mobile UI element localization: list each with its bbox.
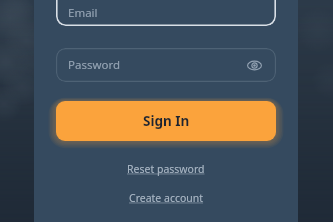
staticText: Create account [129,191,204,205]
button[interactable]: Password [56,48,276,82]
button[interactable]: Sign In [56,101,276,141]
staticText: Sign In [143,112,190,130]
button[interactable]: Reset password [121,159,211,179]
staticText: Password [68,57,244,73]
button[interactable]: Email [56,0,276,26]
staticText: Reset password [127,162,205,176]
staticText: Email [68,5,98,21]
button[interactable]: Show password [244,55,264,75]
button[interactable]: Create account [123,188,210,208]
